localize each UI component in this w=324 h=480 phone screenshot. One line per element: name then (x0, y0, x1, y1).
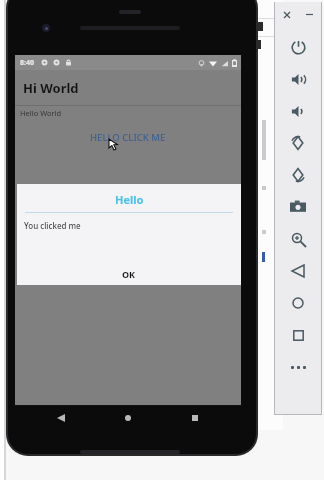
button[interactable]: Zoom (286, 227, 310, 251)
staticText: OK (122, 268, 136, 280)
button[interactable]: Home (120, 410, 136, 426)
button[interactable]: Overview (286, 323, 310, 347)
button[interactable]: Power (286, 35, 310, 59)
button[interactable]: Take screenshot (286, 195, 310, 219)
button[interactable]: Rotate left (286, 131, 310, 155)
staticText: Hello (115, 192, 144, 207)
button[interactable]: Back (286, 259, 310, 283)
button[interactable]: Minimize (303, 8, 316, 21)
button[interactable]: Rotate right (286, 163, 310, 187)
staticText: You clicked me (24, 220, 81, 231)
button[interactable]: More (286, 355, 310, 379)
staticText: HELLO CLICK ME (90, 131, 166, 144)
button[interactable]: OK (104, 263, 154, 285)
button[interactable]: Volume down (286, 99, 310, 123)
staticText: Hi World (23, 79, 79, 97)
staticText: Hello World (20, 108, 62, 118)
button[interactable]: Close (280, 8, 293, 21)
button[interactable]: HELLO CLICK ME (15, 128, 241, 147)
button[interactable]: Home (286, 291, 310, 315)
button[interactable]: Volume up (286, 67, 310, 91)
button[interactable]: Back (53, 410, 69, 426)
staticText: 8:40 (20, 58, 34, 68)
button[interactable]: Recent apps (187, 410, 203, 426)
